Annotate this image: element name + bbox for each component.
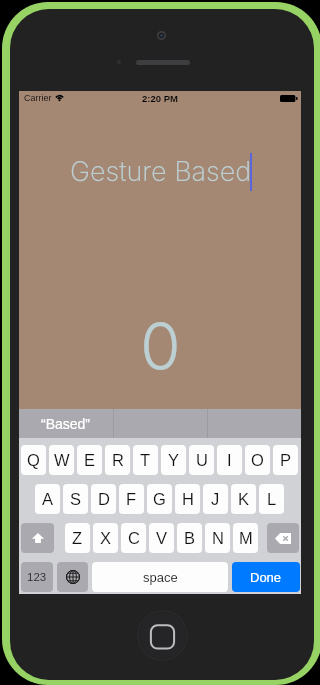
staticText: N [212,529,224,547]
button[interactable]: I [217,445,242,475]
button[interactable]: C [121,523,146,553]
staticText: E [84,451,96,469]
staticText: U [196,451,208,469]
button[interactable]: Z [65,523,90,553]
button[interactable]: T [133,445,158,475]
button[interactable]: Gesture Based [70,155,252,188]
staticText: 2:20 PM [142,93,178,104]
staticText: L [267,490,277,508]
staticText: “Based” [41,416,91,432]
staticText: T [140,451,151,469]
staticText: Y [168,451,180,469]
button[interactable]: D [91,484,116,514]
button[interactable]: S [63,484,88,514]
staticText: G [153,490,166,508]
staticText: J [211,490,220,508]
button[interactable]: Change keyboard language [57,562,88,592]
button[interactable]: space [92,562,228,592]
staticText: S [70,490,82,508]
button[interactable]: J [203,484,228,514]
button[interactable]: “Based” [19,409,113,438]
button[interactable]: V [149,523,174,553]
button[interactable]: Backspace [267,523,299,553]
button[interactable]: E [77,445,102,475]
staticText: A [42,490,54,508]
staticText: Done [250,570,282,585]
button[interactable]: Home [137,610,188,661]
staticText: M [239,529,253,547]
staticText: D [98,490,110,508]
button[interactable]: O [245,445,270,475]
staticText: Q [27,451,40,469]
staticText: R [112,451,124,469]
staticText: F [126,490,137,508]
button[interactable]: A [35,484,60,514]
button[interactable]: W [49,445,74,475]
button[interactable]: M [233,523,258,553]
button[interactable]: Y [161,445,186,475]
button[interactable]: B [177,523,202,553]
button[interactable]: X [93,523,118,553]
staticText: P [280,451,292,469]
staticText: X [100,529,112,547]
button[interactable]: Q [21,445,46,475]
button[interactable]: F [119,484,144,514]
staticText: 123 [27,571,47,584]
staticText: C [128,529,140,547]
button[interactable]: K [231,484,256,514]
staticText: Z [72,529,83,547]
staticText: 0 [140,306,181,386]
button[interactable]: L [259,484,284,514]
button[interactable]: P [273,445,298,475]
button[interactable]: N [205,523,230,553]
staticText: O [251,451,264,469]
button[interactable]: Shift [21,523,54,553]
button[interactable]: R [105,445,130,475]
button[interactable]: Done [232,562,300,592]
staticText: space [143,570,178,585]
staticText: V [156,529,168,547]
staticText: K [238,490,250,508]
staticText: Carrier [24,93,52,103]
button[interactable]: G [147,484,172,514]
button[interactable]: U [189,445,214,475]
staticText: H [182,490,194,508]
button[interactable]: H [175,484,200,514]
staticText: I [227,451,232,469]
button[interactable]: 123 [21,562,53,592]
staticText: W [54,451,70,469]
staticText: B [184,529,196,547]
